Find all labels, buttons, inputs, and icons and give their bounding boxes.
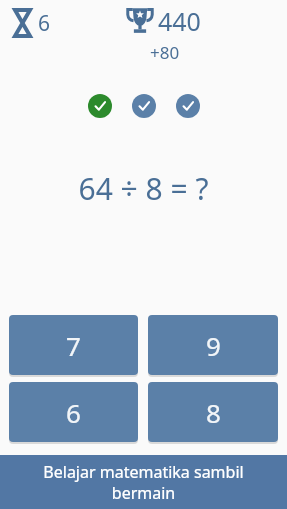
button[interactable]: Trophy score <box>120 2 203 40</box>
button[interactable]: Correct answer <box>88 94 112 118</box>
other: Remaining time <box>13 8 32 38</box>
button[interactable]: 6 <box>9 382 138 442</box>
staticText: 64 ÷ 8 = ? <box>78 168 209 209</box>
button[interactable]: Remaining time <box>11 6 53 40</box>
staticText: 8 <box>206 395 221 430</box>
button[interactable]: 8 <box>148 382 278 442</box>
button[interactable]: 7 <box>9 315 138 375</box>
staticText: 440 <box>158 4 201 38</box>
staticText: 9 <box>206 328 221 363</box>
staticText: 6 <box>38 9 51 38</box>
button[interactable]: 9 <box>148 315 278 375</box>
button[interactable]: Correct answer <box>176 94 200 118</box>
button[interactable]: Correct answer <box>132 94 156 118</box>
staticText: Belajar matematika sambil bermain <box>10 461 277 504</box>
staticText: 6 <box>66 395 81 430</box>
button[interactable]: Belajar matematika sambil bermain <box>0 455 287 509</box>
other: Trophy score <box>122 5 158 37</box>
staticText: +80 <box>150 41 180 64</box>
staticText: 7 <box>66 328 81 363</box>
